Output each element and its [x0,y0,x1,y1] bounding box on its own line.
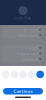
button[interactable]: Privacy [2,45,43,51]
staticText: Notifications [17,32,38,38]
staticText: Account [24,27,38,32]
button[interactable]: Language [2,56,43,62]
button[interactable]: Choose avatar 1 [2,71,10,78]
button[interactable]: Choose avatar 2 [11,71,18,78]
button[interactable]: Choose avatar 3 [19,71,27,78]
button[interactable]: Account [2,27,43,32]
staticText: Language [22,56,38,62]
button[interactable]: Choose avatar 4 [28,71,35,78]
button[interactable]: Choose avatar 5 [36,71,44,78]
button[interactable]: Notifications [2,32,43,38]
button[interactable]: Appearance [2,51,43,56]
staticText: Appearance [17,51,38,56]
staticText: Continue [13,89,32,94]
staticText: Jordan Blake [14,16,31,20]
button[interactable]: Continue [3,88,43,94]
